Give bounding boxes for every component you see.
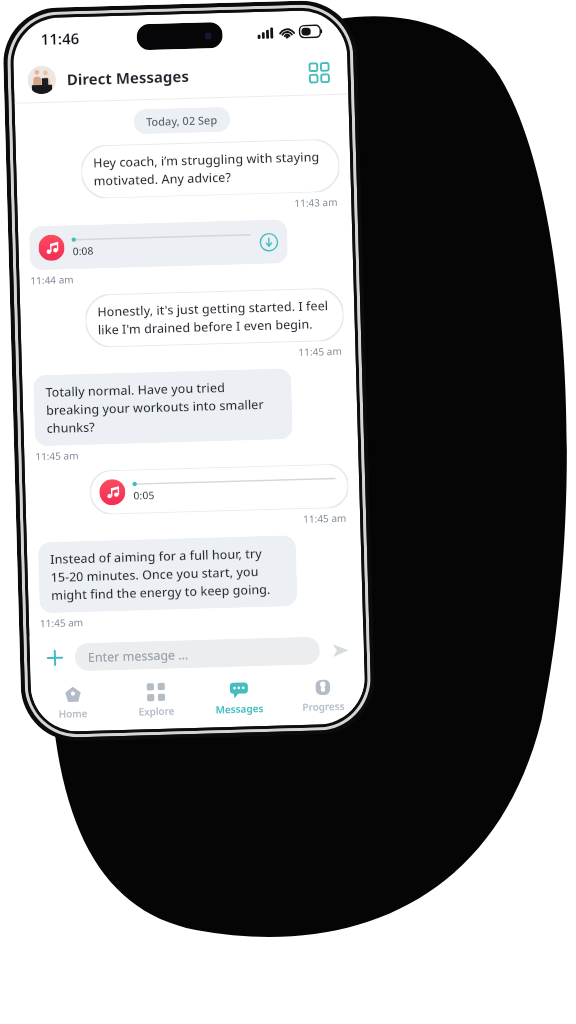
button[interactable]: Home: [31, 682, 115, 723]
button[interactable]: Messages: [197, 678, 282, 719]
button[interactable]: Explore: [114, 680, 198, 721]
staticText: 0:08: [72, 244, 94, 258]
staticText: 11:45 am: [40, 615, 84, 630]
staticText: Progress: [302, 699, 345, 714]
staticText: Explore: [138, 703, 175, 718]
staticText: Home: [58, 706, 88, 721]
button[interactable]: Honestly, it's just getting started. I f…: [85, 288, 344, 348]
staticText: Enter message ...: [88, 646, 189, 666]
staticText: Messages: [215, 701, 264, 716]
button[interactable]: Totally normal. Have you tried breaking …: [33, 368, 293, 446]
button[interactable]: Instead of aiming for a full hour, try 1…: [38, 535, 298, 613]
staticText: 11:45 am: [298, 344, 343, 359]
other: Play audio: [38, 234, 65, 261]
staticText: 11:45 am: [35, 448, 79, 463]
button[interactable]: Add attachment: [42, 644, 68, 671]
staticText: 11:45 am: [303, 511, 347, 526]
staticText: Honestly, it's just getting started. I f…: [97, 297, 332, 338]
other: Play audio: [99, 479, 126, 505]
staticText: Instead of aiming for a full hour, try 1…: [50, 544, 285, 604]
staticText: Totally normal. Have you tried breaking …: [45, 377, 281, 437]
staticText: 11:44 am: [30, 272, 75, 287]
staticText: 0:05: [133, 488, 155, 503]
button[interactable]: Enter message ...: [75, 636, 320, 671]
staticText: 11:43 am: [294, 195, 339, 210]
button[interactable]: Grid view: [303, 57, 334, 88]
button[interactable]: Send: [327, 638, 352, 662]
staticText: Today, 02 Sep: [146, 112, 218, 129]
button[interactable]: Play audio: [29, 219, 288, 270]
staticText: Hey coach, i’m struggling with staying m…: [93, 148, 328, 190]
button[interactable]: Progress: [281, 675, 366, 716]
staticText: 11:46: [40, 28, 80, 49]
button[interactable]: Download audio: [258, 231, 279, 252]
staticText: Direct Messages: [66, 66, 190, 89]
button[interactable]: Hey coach, i’m struggling with staying m…: [81, 139, 340, 199]
button[interactable]: Play audio: [90, 464, 349, 515]
